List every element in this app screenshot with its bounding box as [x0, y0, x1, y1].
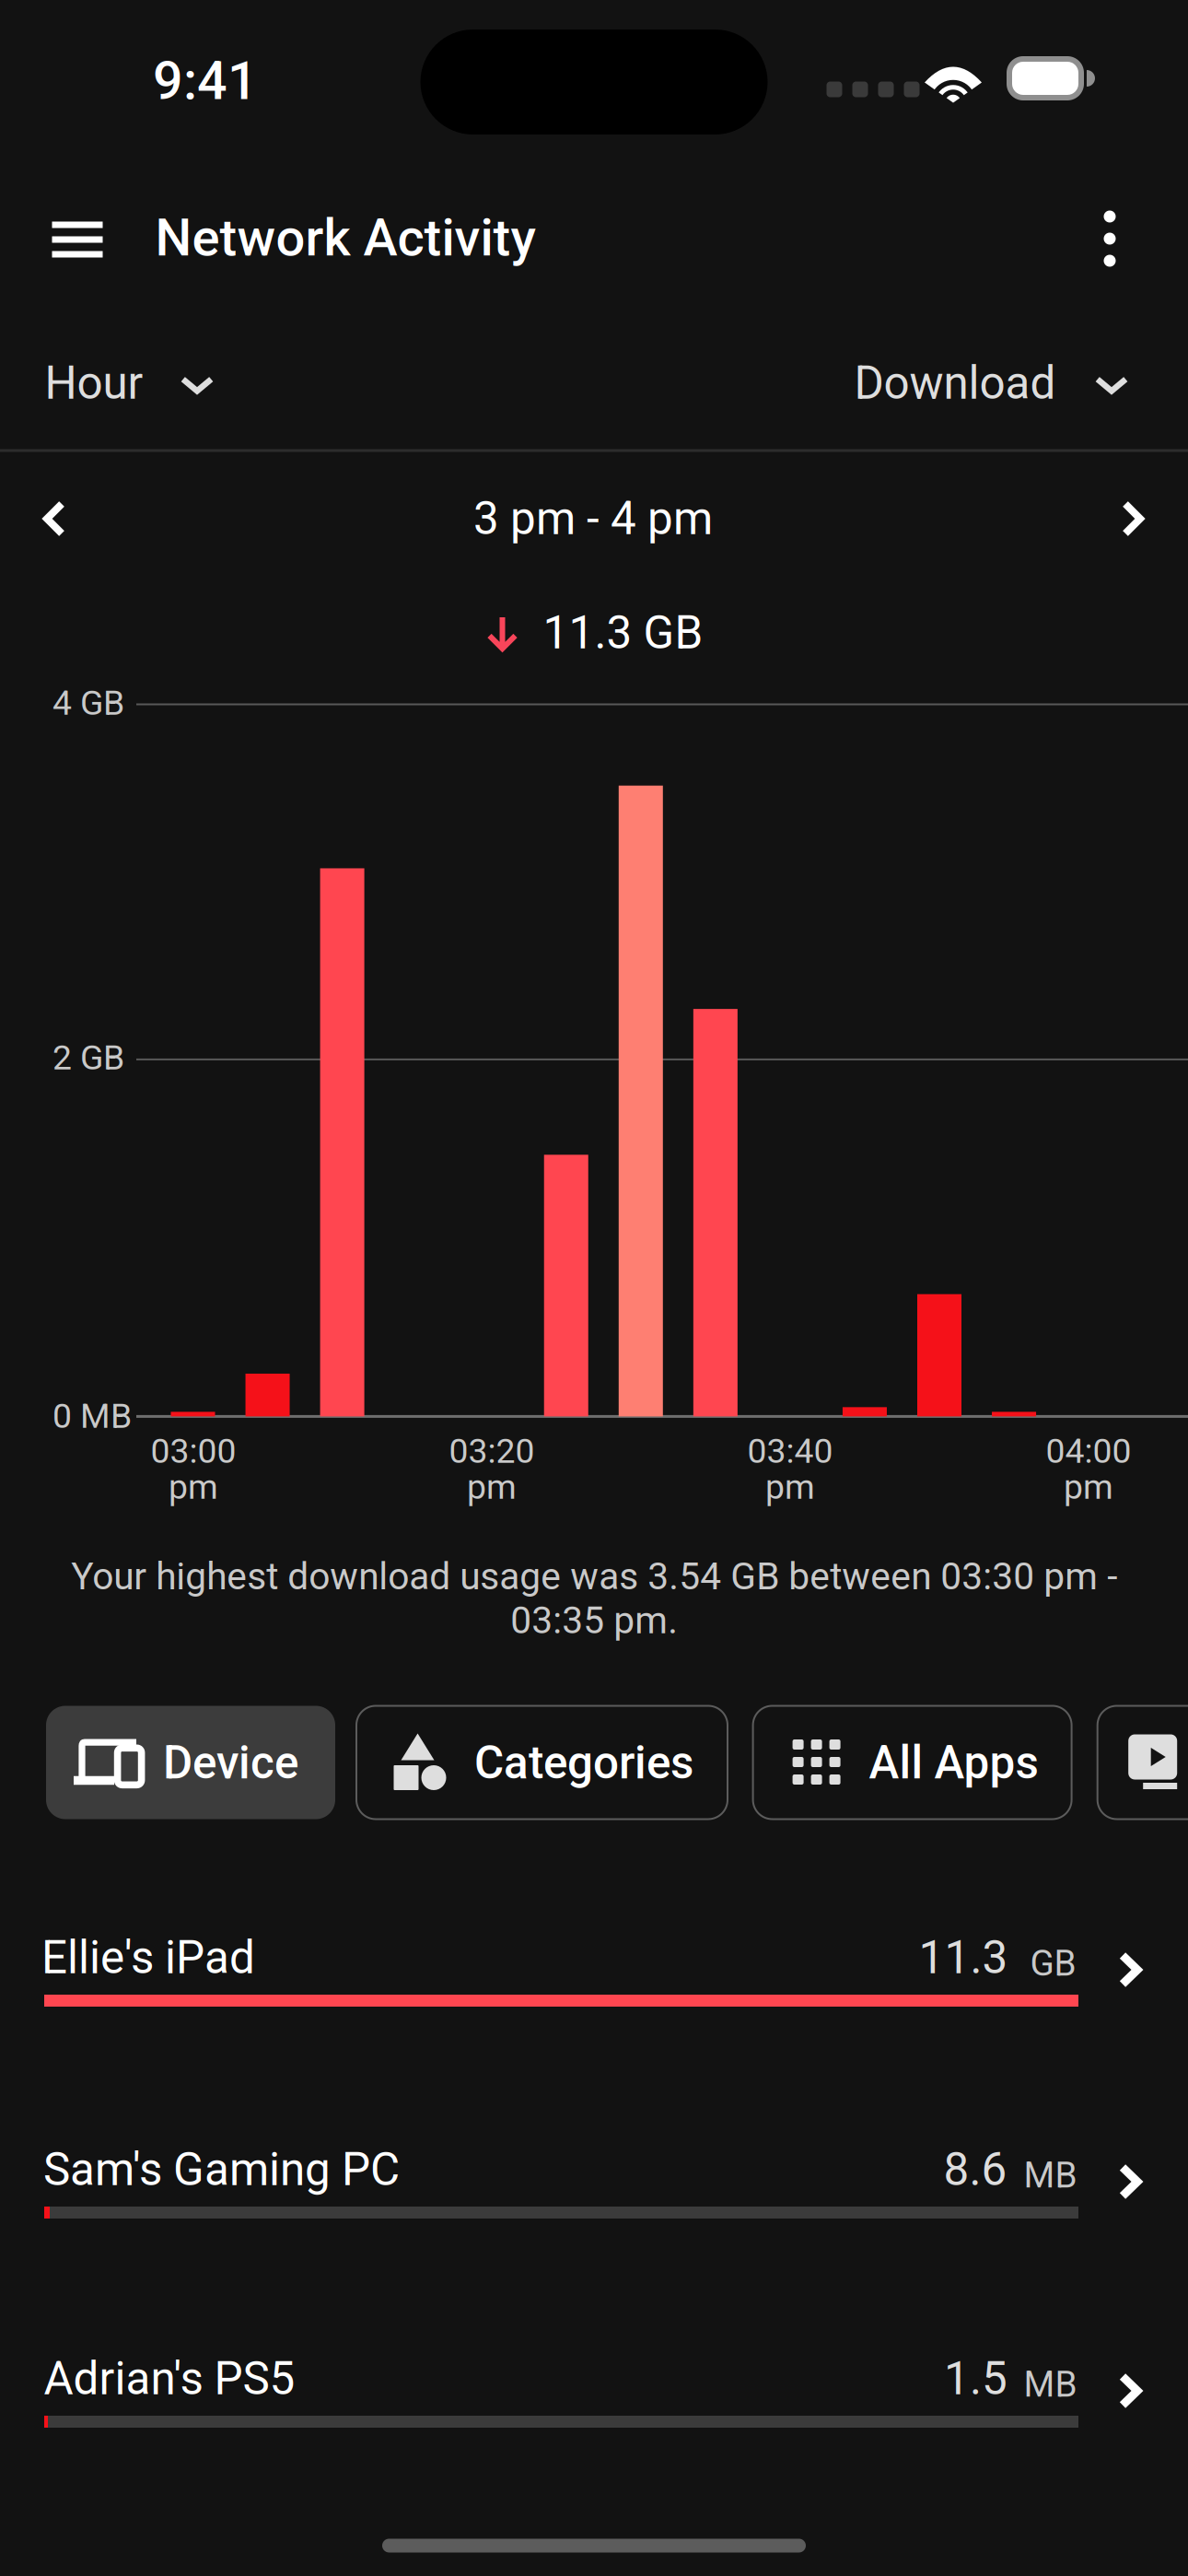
staticText: Categories: [474, 1736, 693, 1790]
staticText: 1.5: [944, 2352, 1007, 2405]
staticText: Sam's Gaming PC: [43, 2143, 400, 2196]
button[interactable]: Previous period: [4, 469, 105, 568]
button[interactable]: [1097, 1706, 1188, 1819]
staticText: 03:00: [151, 1431, 236, 1471]
staticText: 9:41: [153, 50, 258, 112]
staticText: MB: [1024, 2363, 1077, 2405]
button[interactable]: All Apps: [753, 1706, 1072, 1819]
button[interactable]: Hour: [0, 328, 241, 439]
staticText: Device: [163, 1736, 298, 1790]
button[interactable]: More options: [1064, 188, 1156, 289]
staticText: Adrian's PS5: [44, 2352, 295, 2405]
staticText: 03:20: [449, 1431, 535, 1471]
button[interactable]: Download: [829, 328, 1160, 439]
staticText: pm: [765, 1467, 815, 1507]
button[interactable]: Next period: [1082, 469, 1183, 568]
staticText: 2 GB: [52, 1037, 124, 1078]
staticText: Download: [854, 357, 1056, 410]
button[interactable]: Device: [46, 1706, 335, 1819]
staticText: Network Activity: [155, 207, 536, 268]
staticText: Your highest download usage was 3.54 GB …: [71, 1555, 1117, 1642]
staticText: Ellie's iPad: [41, 1931, 255, 1984]
staticText: 11.3: [919, 1931, 1008, 1984]
button[interactable]: Sam's Gaming PC: [0, 2153, 1188, 2319]
staticText: 04:00: [1046, 1431, 1131, 1471]
button[interactable]: Menu: [22, 189, 133, 290]
staticText: 0 MB: [52, 1396, 132, 1436]
staticText: GB: [1030, 1942, 1076, 1984]
staticText: All Apps: [869, 1736, 1038, 1790]
staticText: 4 GB: [52, 683, 124, 723]
button[interactable]: Adrian's PS5: [0, 2362, 1188, 2528]
staticText: 03:40: [747, 1431, 833, 1471]
staticText: Hour: [45, 357, 143, 410]
button[interactable]: Categories: [356, 1706, 728, 1819]
staticText: 3 pm - 4 pm: [473, 492, 713, 545]
button[interactable]: Ellie's iPad: [0, 1941, 1188, 2107]
staticText: pm: [467, 1467, 517, 1507]
staticText: 8.6: [943, 2143, 1007, 2196]
staticText: 11.3 GB: [543, 606, 703, 660]
staticText: pm: [169, 1467, 218, 1507]
staticText: MB: [1024, 2154, 1077, 2196]
staticText: pm: [1064, 1467, 1113, 1507]
